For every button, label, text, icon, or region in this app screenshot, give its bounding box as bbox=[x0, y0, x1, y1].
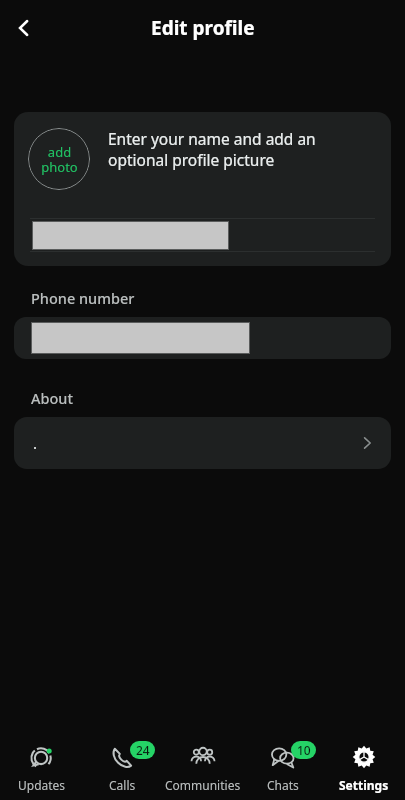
button[interactable]: Settings bbox=[325, 722, 403, 793]
button[interactable]: . bbox=[14, 417, 391, 469]
staticText: Edit profile bbox=[151, 15, 255, 41]
button[interactable]: 10 bbox=[244, 722, 322, 793]
staticText: Enter your name and add an optional prof… bbox=[108, 128, 375, 171]
button[interactable]: Back bbox=[0, 4, 48, 52]
staticText: . bbox=[33, 433, 38, 453]
staticText: Updates bbox=[18, 777, 66, 793]
button[interactable]: 24 bbox=[83, 722, 161, 793]
button[interactable] bbox=[14, 219, 391, 251]
staticText: Chats bbox=[267, 777, 299, 793]
button[interactable]: add photo bbox=[28, 128, 90, 190]
staticText: add photo bbox=[41, 143, 78, 176]
button[interactable]: Communities bbox=[164, 722, 242, 793]
staticText: Calls bbox=[109, 777, 136, 793]
staticText: Communities bbox=[165, 777, 241, 793]
staticText: Settings bbox=[339, 777, 389, 793]
staticText: 24 bbox=[136, 742, 150, 758]
button[interactable]: Updates bbox=[3, 722, 81, 793]
staticText: About bbox=[31, 388, 73, 408]
staticText: 10 bbox=[297, 742, 311, 758]
button[interactable] bbox=[14, 317, 391, 359]
staticText: Phone number bbox=[31, 288, 135, 308]
